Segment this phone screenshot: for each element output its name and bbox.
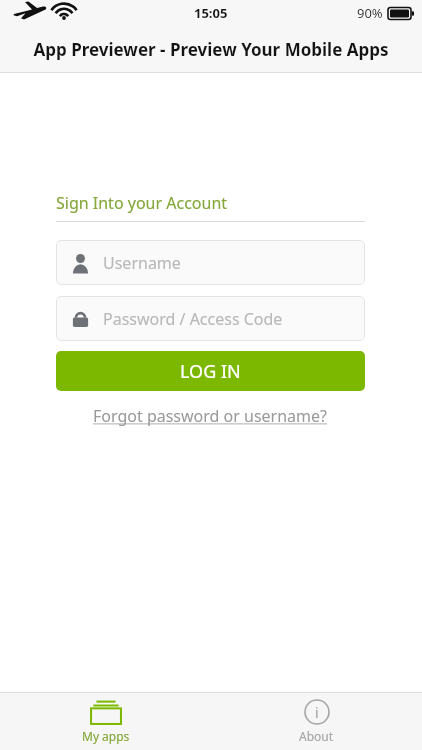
staticText: Forgot password or username?	[93, 405, 328, 427]
button[interactable]: Username	[56, 240, 365, 285]
staticText: About	[299, 728, 334, 744]
button[interactable]: Password / Access Code	[56, 296, 365, 341]
staticText: Username	[103, 252, 181, 274]
staticText: My apps	[82, 728, 130, 744]
button[interactable]: My apps	[0, 693, 211, 750]
staticText: LOG IN	[180, 359, 241, 384]
staticText: 90%	[357, 4, 383, 22]
button[interactable]: Forgot password or username?	[93, 405, 328, 427]
staticText: Sign Into your Account	[56, 192, 228, 214]
staticText: App Previewer - Preview Your Mobile Apps	[33, 38, 389, 61]
button[interactable]: About	[211, 693, 422, 750]
staticText: i	[315, 703, 319, 722]
staticText: 15:05	[194, 4, 228, 22]
button[interactable]: LOG IN	[56, 351, 365, 391]
staticText: Password / Access Code	[103, 308, 283, 330]
